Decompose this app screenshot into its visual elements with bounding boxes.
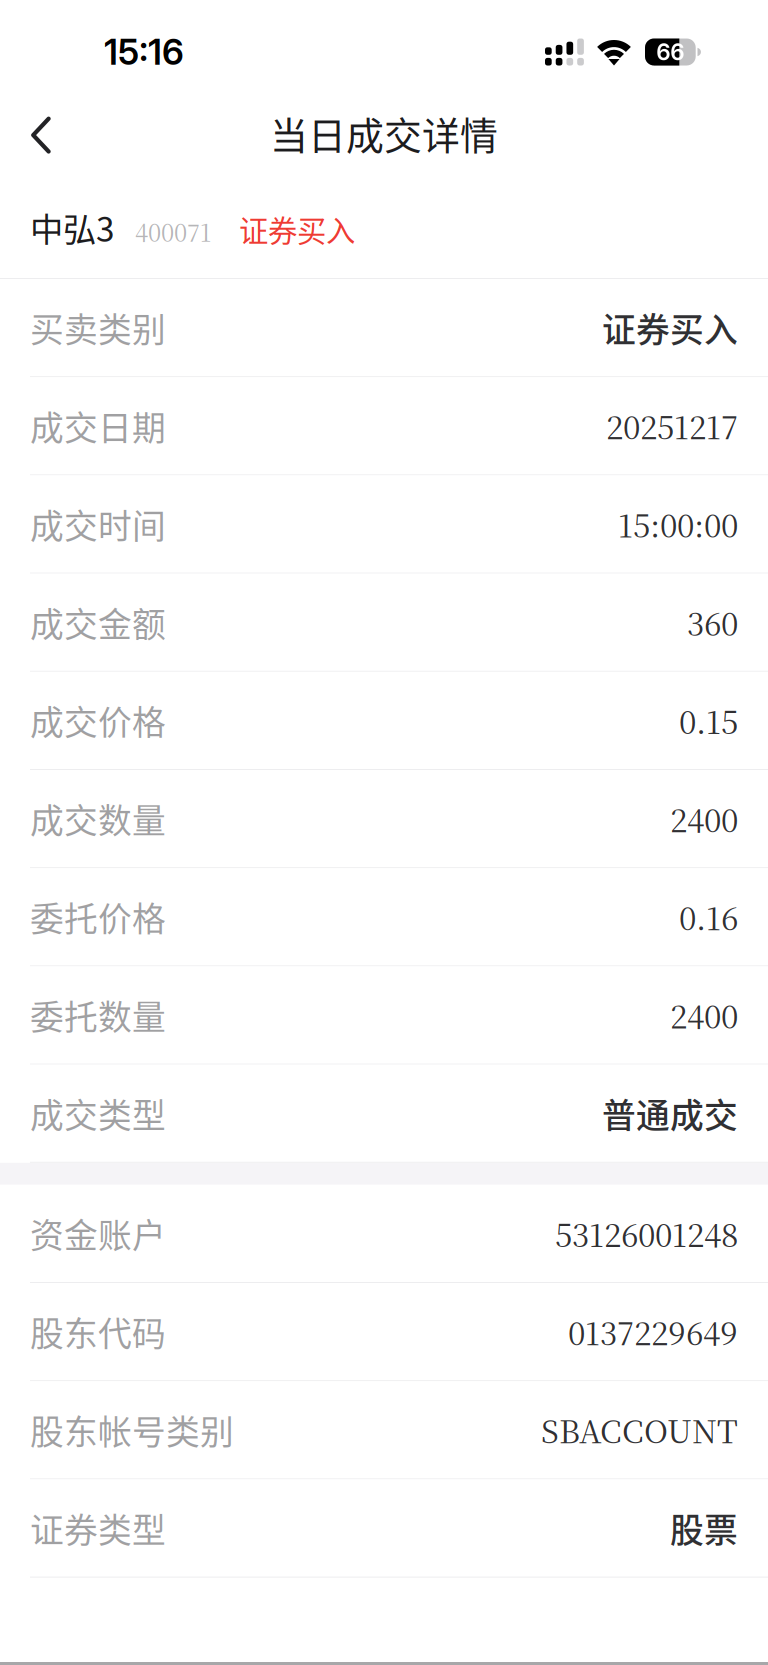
staticText: 0.16 — [679, 894, 738, 939]
staticText: 当日成交详情 — [270, 106, 498, 160]
staticText: 资金账户 — [30, 1209, 166, 1258]
staticText: 15:16 — [104, 31, 184, 73]
staticText: 委托数量 — [30, 991, 166, 1039]
staticText: 证券类型 — [30, 1504, 166, 1552]
staticText: 普通成交 — [602, 1089, 738, 1138]
button[interactable]: 成交时间 — [0, 475, 768, 574]
staticText: 0.15 — [679, 698, 738, 743]
staticText: 0137229649 — [568, 1309, 738, 1354]
button[interactable]: 资金账户 — [0, 1185, 768, 1283]
staticText: 股票 — [670, 1504, 738, 1552]
button[interactable]: 股东帐号类别 — [0, 1381, 768, 1479]
staticText: 360 — [687, 600, 738, 645]
button[interactable]: 成交价格 — [0, 672, 768, 770]
staticText: 成交价格 — [30, 696, 166, 745]
staticText: 15:00:00 — [618, 501, 738, 546]
staticText: 中弘3 — [30, 203, 115, 251]
staticText: 53126001248 — [555, 1211, 738, 1256]
staticText: 成交日期 — [30, 401, 166, 450]
staticText: 委托价格 — [30, 892, 166, 941]
button[interactable]: 成交数量 — [0, 770, 768, 868]
staticText: 成交数量 — [30, 794, 166, 843]
staticText: 股东帐号类别 — [30, 1405, 234, 1454]
button[interactable]: 证券类型 — [0, 1479, 768, 1578]
button[interactable]: 委托价格 — [0, 868, 768, 966]
button[interactable]: 成交日期 — [0, 377, 768, 475]
staticText: 2400 — [670, 992, 738, 1037]
staticText: 66 — [656, 38, 684, 66]
button[interactable]: 成交金额 — [0, 574, 768, 672]
button[interactable]: Back — [0, 104, 92, 166]
staticText: SBACCOUNT — [541, 1407, 738, 1452]
staticText: 成交类型 — [30, 1089, 166, 1138]
button[interactable]: 成交类型 — [0, 1065, 768, 1163]
staticText: 20251217 — [606, 403, 738, 448]
button[interactable]: 委托数量 — [0, 966, 768, 1065]
staticText: 证券买入 — [602, 303, 738, 352]
staticText: 证券买入 — [239, 208, 355, 250]
staticText: 成交金额 — [30, 598, 166, 647]
staticText: 2400 — [670, 796, 738, 841]
staticText: 股东代码 — [30, 1307, 166, 1356]
button[interactable]: 买卖类别 — [0, 279, 768, 377]
staticText: 400071 — [135, 214, 211, 248]
staticText: 买卖类别 — [30, 303, 166, 352]
button[interactable]: 股东代码 — [0, 1283, 768, 1381]
staticText: 成交时间 — [30, 500, 166, 548]
